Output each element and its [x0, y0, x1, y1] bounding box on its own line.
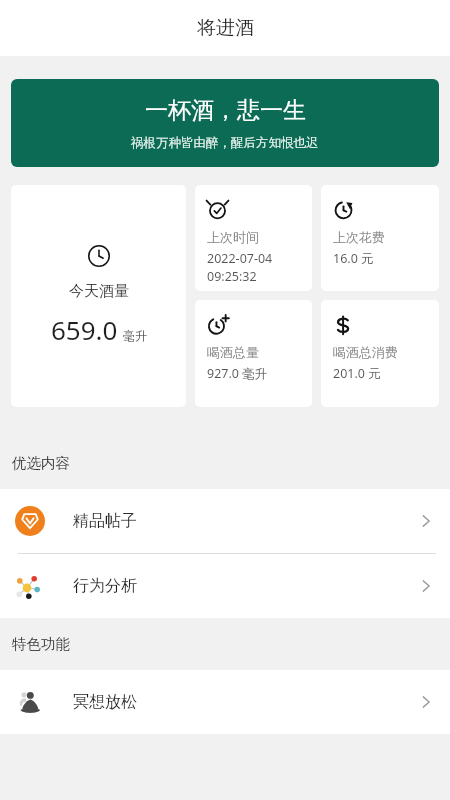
staticText: 特色功能	[12, 635, 70, 653]
button[interactable]: 冥想放松	[0, 670, 450, 734]
staticText: 精品帖子	[73, 511, 137, 531]
staticText: 2022-07-04	[207, 250, 273, 267]
staticText: 喝酒总消费	[333, 344, 398, 360]
staticText: 201.0 元	[333, 365, 381, 382]
button[interactable]: 精品帖子	[0, 489, 450, 553]
staticText: 今天酒量	[69, 282, 129, 301]
staticText: 祸根万种皆由醉，醒后方知恨也迟	[131, 135, 319, 151]
staticText: 上次花费	[333, 229, 385, 245]
staticText: 毫升	[123, 328, 147, 343]
staticText: 行为分析	[73, 576, 137, 596]
button[interactable]: 上次时间	[195, 185, 312, 291]
button[interactable]: 喝酒总量	[195, 300, 312, 407]
staticText: 喝酒总量	[207, 344, 259, 360]
staticText: 927.0 毫升	[207, 365, 268, 382]
staticText: 659.0	[51, 312, 118, 347]
button[interactable]: 今天酒量	[11, 185, 186, 407]
staticText: 一杯酒，悲一生	[145, 96, 306, 125]
button[interactable]: 行为分析	[0, 554, 450, 618]
staticText: 将进酒	[197, 16, 254, 40]
staticText: 16.0 元	[333, 250, 374, 267]
staticText: 优选内容	[12, 454, 70, 472]
button[interactable]: 喝酒总消费	[321, 300, 439, 407]
staticText: 上次时间	[207, 229, 259, 245]
staticText: 冥想放松	[73, 692, 137, 712]
button[interactable]: 一杯酒，悲一生	[11, 79, 439, 167]
button[interactable]: 上次花费	[321, 185, 439, 291]
staticText: 09:25:32	[207, 268, 257, 285]
